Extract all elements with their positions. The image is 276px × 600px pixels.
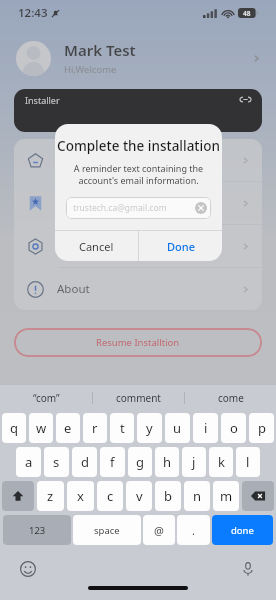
staticText: space [94, 524, 120, 537]
staticText: Resume Installtion [96, 336, 180, 349]
button[interactable]: b [155, 481, 181, 511]
staticText: 48 [243, 9, 251, 18]
button[interactable]: Installer [14, 89, 262, 132]
staticText: A reminder text containing the account's… [65, 162, 212, 187]
button[interactable]: Settings [27, 225, 249, 267]
staticText: d [81, 453, 89, 471]
button[interactable]: j [182, 447, 206, 477]
staticText: @ [154, 523, 164, 538]
button[interactable]: v [126, 481, 152, 511]
button[interactable] [27, 139, 249, 181]
other: Link [240, 94, 251, 105]
staticText: 12:43 [18, 5, 48, 21]
staticText: g [136, 453, 144, 471]
staticText: come [218, 391, 244, 405]
button[interactable]: m [213, 481, 239, 511]
button[interactable]: a [16, 447, 41, 477]
staticText: Complete the installation [55, 137, 222, 155]
button[interactable]: come [185, 385, 276, 411]
staticText: s [53, 453, 60, 471]
staticText: Done [167, 239, 195, 254]
staticText: n [193, 487, 202, 505]
staticText: t [120, 419, 125, 437]
button[interactable]: s [44, 447, 69, 477]
button[interactable]: o [221, 413, 246, 443]
button[interactable] [27, 182, 249, 224]
button[interactable]: h [155, 447, 179, 477]
staticText: w [36, 419, 47, 437]
button[interactable]: d [72, 447, 97, 477]
staticText: u [173, 419, 182, 437]
button[interactable]: Backspace [242, 481, 274, 511]
button[interactable]: comment [93, 385, 184, 411]
staticText: p [258, 419, 266, 437]
button[interactable]: Emoji keyboard [20, 561, 36, 577]
staticText: . [192, 523, 195, 538]
staticText: c [107, 487, 114, 505]
staticText: l [246, 453, 250, 471]
staticText: y [146, 419, 153, 437]
button[interactable]: Cancel [55, 231, 138, 261]
button[interactable]: g [128, 447, 152, 477]
button[interactable]: l [236, 447, 260, 477]
button[interactable]: 123 [3, 515, 71, 545]
button[interactable]: k [209, 447, 233, 477]
button[interactable]: . [177, 515, 210, 545]
staticText: e [64, 419, 72, 437]
button[interactable]: Clear text [195, 202, 207, 214]
staticText: v [136, 487, 143, 505]
staticText: j [192, 453, 196, 471]
staticText: 123 [29, 524, 46, 537]
button[interactable]: c [97, 481, 123, 511]
staticText: “com” [33, 391, 60, 405]
button[interactable]: @ [143, 515, 175, 545]
staticText: k [218, 453, 225, 471]
button[interactable]: e [56, 413, 80, 443]
button[interactable]: x [67, 481, 94, 511]
button[interactable]: space [73, 515, 141, 545]
button[interactable]: q [2, 413, 26, 443]
staticText: x [77, 487, 84, 505]
button[interactable]: y [137, 413, 162, 443]
staticText: z [47, 487, 54, 505]
button[interactable]: Shift [2, 481, 34, 511]
staticText: m [220, 487, 233, 505]
staticText: Cancel [79, 239, 114, 254]
button[interactable]: Mark Test [16, 36, 260, 80]
staticText: done [231, 524, 254, 537]
staticText: o [230, 419, 238, 437]
button[interactable]: Dictation [240, 561, 256, 577]
button[interactable]: n [184, 481, 210, 511]
button[interactable]: r [83, 413, 107, 443]
button[interactable]: w [29, 413, 53, 443]
staticText: Installer [25, 94, 60, 106]
button[interactable]: Done [139, 231, 222, 261]
staticText: Hi,Welcome [64, 63, 117, 76]
button[interactable]: trustech.ca@gmail.com [66, 197, 211, 219]
staticText: r [92, 419, 98, 437]
button[interactable]: t [110, 413, 134, 443]
staticText: Mark Test [64, 40, 136, 60]
button[interactable]: About [27, 268, 249, 310]
button[interactable]: u [165, 413, 190, 443]
staticText: About [57, 281, 90, 297]
button[interactable]: i [193, 413, 218, 443]
button[interactable]: p [249, 413, 274, 443]
button[interactable]: f [100, 447, 125, 477]
staticText: trustech.ca@gmail.com [73, 202, 167, 214]
staticText: f [110, 453, 115, 471]
button[interactable]: Resume Installtion [14, 328, 262, 357]
button[interactable]: done [212, 515, 273, 545]
staticText: q [10, 419, 18, 437]
staticText: b [164, 487, 172, 505]
staticText: a [25, 453, 33, 471]
button[interactable]: “com” [0, 385, 92, 411]
staticText: i [204, 419, 208, 437]
staticText: h [163, 453, 172, 471]
staticText: Settings [57, 238, 101, 254]
button[interactable]: z [37, 481, 64, 511]
staticText: comment [116, 391, 161, 405]
